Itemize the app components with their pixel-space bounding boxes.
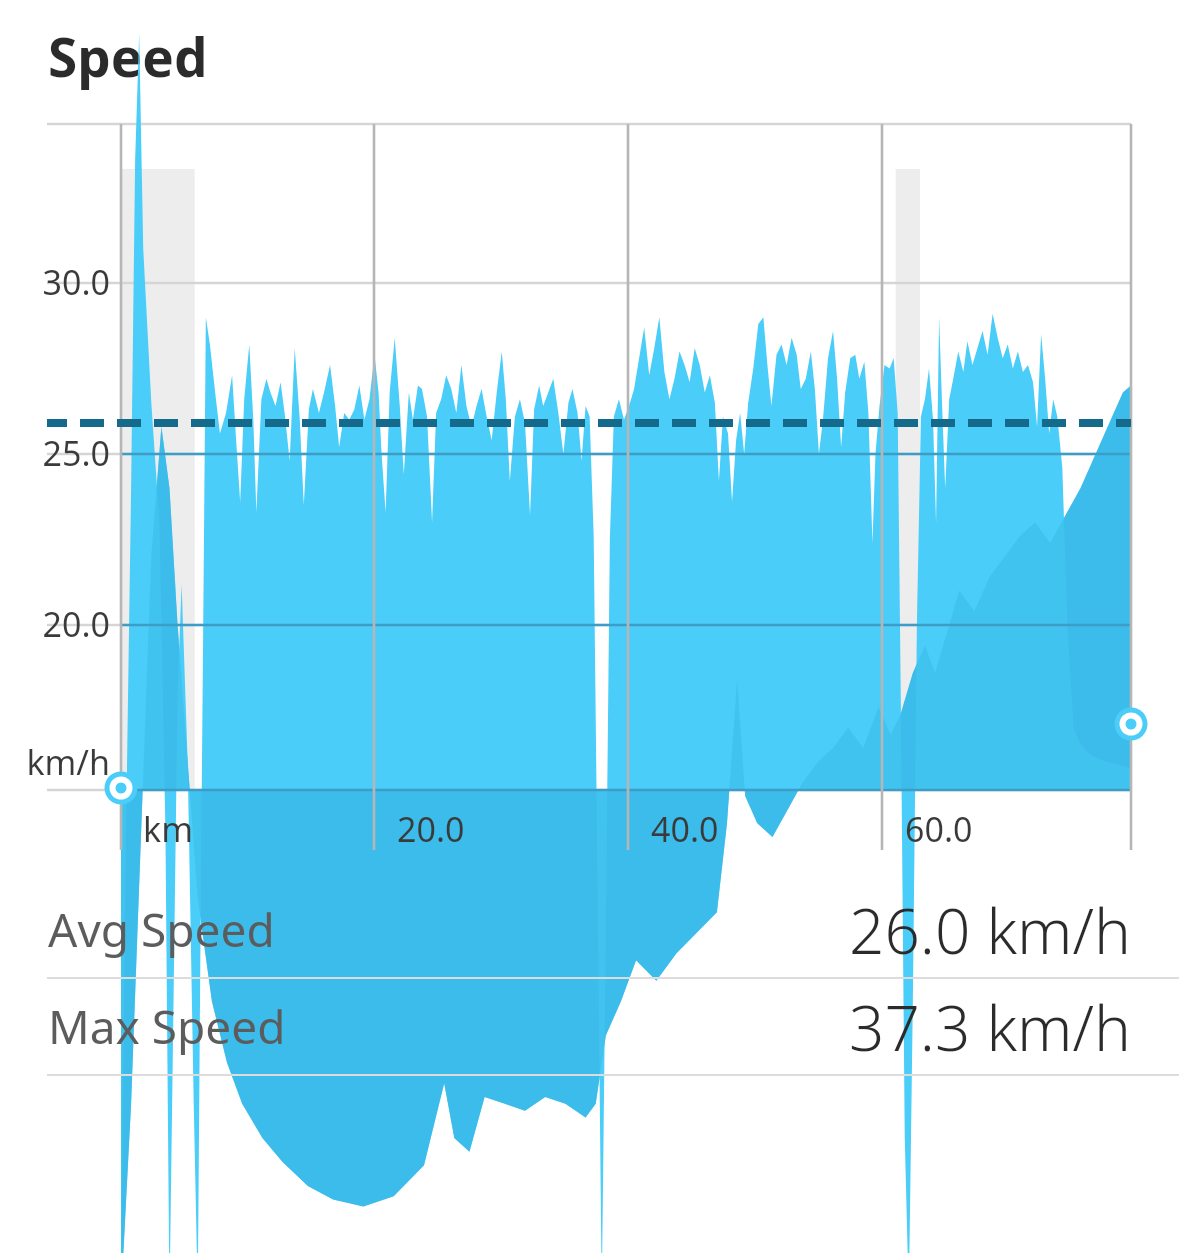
button[interactable]: Avg Speed [0, 882, 1179, 977]
staticText: Max Speed [48, 995, 286, 1058]
button[interactable]: Max Speed [0, 979, 1179, 1074]
button[interactable]: Speed over distance chart [0, 92, 1179, 862]
staticText: Avg Speed [48, 898, 275, 961]
staticText: km/h [0, 739, 110, 785]
staticText: 60.0 [905, 806, 973, 852]
staticText: 20.0 [0, 601, 110, 647]
staticText: 37.3 km/h [849, 985, 1131, 1069]
staticText: 40.0 [651, 806, 719, 852]
staticText: 25.0 [0, 430, 110, 476]
staticText: 30.0 [0, 259, 110, 305]
staticText: Speed [48, 20, 208, 92]
staticText: km [143, 806, 193, 852]
staticText: 26.0 km/h [849, 888, 1131, 972]
staticText: 20.0 [397, 806, 465, 852]
